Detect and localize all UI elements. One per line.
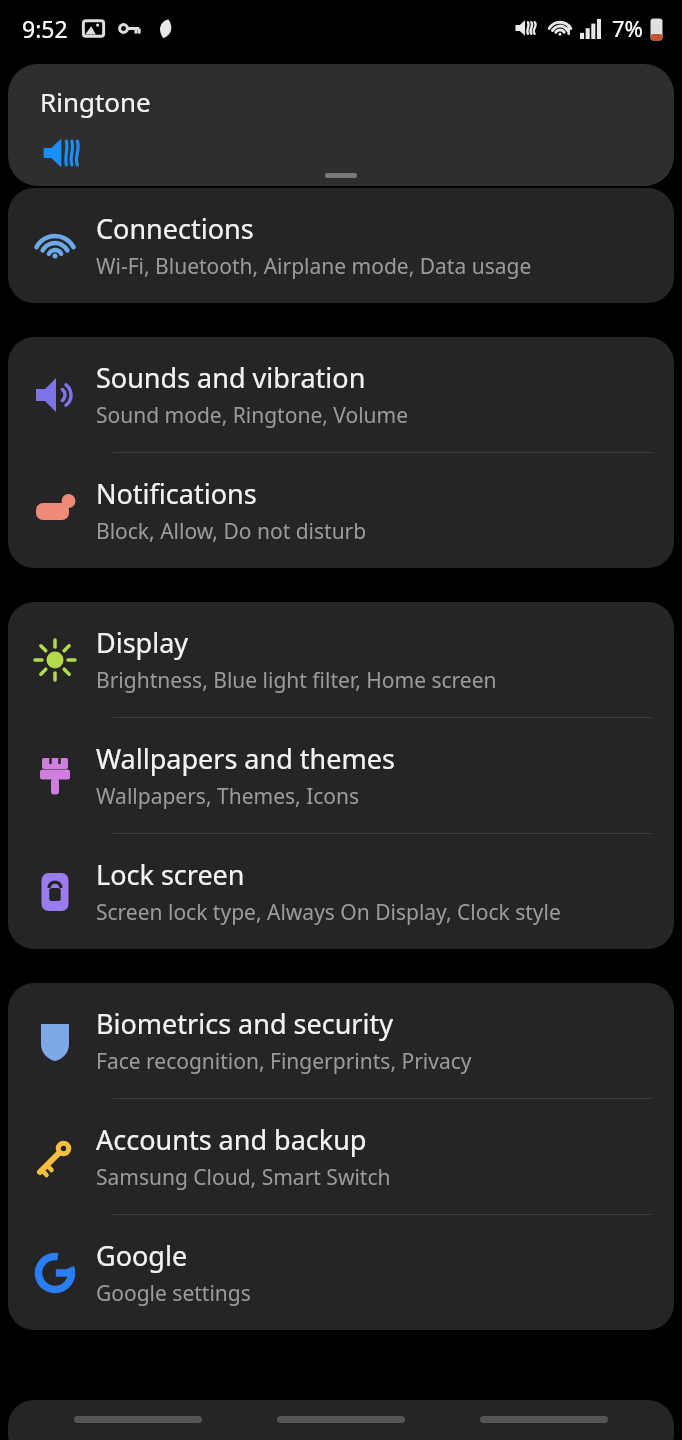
button[interactable]: Connections	[8, 188, 674, 303]
button[interactable]: Google	[8, 1215, 674, 1330]
staticText: Sounds and vibration	[96, 359, 366, 396]
button[interactable]: Accounts and backup	[8, 1099, 674, 1214]
button[interactable]: Sounds and vibration	[8, 337, 674, 452]
button[interactable]: Ringtone mode	[42, 132, 84, 174]
staticText: Wallpapers and themes	[96, 740, 395, 777]
staticText: Biometrics and security	[96, 1005, 393, 1042]
staticText: Google	[96, 1237, 188, 1274]
staticText: Settings	[40, 82, 158, 124]
button[interactable]: Home	[276, 1406, 406, 1432]
button[interactable]: Wallpapers and themes	[8, 718, 674, 833]
button[interactable]: Back	[479, 1406, 609, 1432]
staticText: Brightness, Blue light filter, Home scre…	[96, 666, 497, 695]
button[interactable]	[8, 1400, 674, 1440]
staticText: Block, Allow, Do not disturb	[96, 517, 367, 546]
staticText: Ringtone	[40, 84, 151, 119]
staticText: Notifications	[96, 475, 257, 512]
staticText: Face recognition, Fingerprints, Privacy	[96, 1047, 472, 1076]
staticText: Samsung Cloud, Smart Switch	[96, 1163, 391, 1192]
button[interactable]: Notifications	[8, 453, 674, 568]
button[interactable]: Display	[8, 602, 674, 717]
staticText: 7%	[612, 13, 643, 43]
staticText: Wallpapers, Themes, Icons	[96, 782, 360, 811]
staticText: Display	[96, 624, 189, 661]
staticText: Wi-Fi, Bluetooth, Airplane mode, Data us…	[96, 252, 532, 281]
staticText: Accounts and backup	[96, 1121, 367, 1158]
staticText: Connections	[96, 210, 254, 247]
button[interactable]: Biometrics and security	[8, 983, 674, 1098]
staticText: 9:52	[22, 13, 68, 44]
staticText: Lock screen	[96, 856, 245, 893]
button[interactable]: Recents	[73, 1406, 203, 1432]
staticText: Google settings	[96, 1279, 251, 1308]
staticText: Sound mode, Ringtone, Volume	[96, 401, 409, 430]
staticText: Screen lock type, Always On Display, Clo…	[96, 898, 561, 927]
button[interactable]: Lock screen	[8, 834, 674, 949]
